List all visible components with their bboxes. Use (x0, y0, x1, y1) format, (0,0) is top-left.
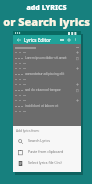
staticText: Search Lyrics (28, 138, 50, 143)
button[interactable]: Back (15, 36, 22, 43)
staticText: sed do eiusmod tempor (25, 88, 61, 92)
button[interactable] (13, 50, 81, 55)
button[interactable] (13, 77, 81, 82)
button[interactable]: consectetur adipiscing elit (13, 71, 81, 77)
button[interactable] (13, 93, 81, 98)
staticText: Add lyrics from: (16, 129, 40, 133)
button[interactable] (13, 61, 81, 66)
button[interactable]: Paste from clipboard (16, 146, 78, 157)
staticText: Paste from clipboard (28, 149, 64, 154)
button[interactable] (13, 109, 81, 114)
button[interactable]: Add line (65, 36, 72, 43)
staticText: add LYRICS (26, 3, 67, 13)
staticText: Lorem ipsum dolor sit amet (25, 56, 67, 60)
button[interactable]: Undo (58, 36, 65, 43)
button[interactable]: Select lyrics file (.lrc) (16, 157, 78, 168)
staticText: incididunt ut labore et (25, 104, 59, 108)
button[interactable] (13, 82, 81, 87)
staticText: consectetur adipiscing elit (25, 72, 65, 76)
staticText: or Search lyrics (3, 14, 90, 29)
button[interactable] (13, 98, 81, 103)
button[interactable]: Lorem ipsum dolor sit amet (13, 55, 81, 61)
button[interactable]: More options (72, 36, 79, 43)
button[interactable]: sed do eiusmod tempor (13, 87, 81, 93)
button[interactable]: incididunt ut labore et (13, 103, 81, 109)
button[interactable]: Search Lyrics (16, 135, 78, 146)
button[interactable] (13, 66, 81, 71)
staticText: Select lyrics file (.lrc) (28, 160, 62, 165)
staticText: Lyrics Editor (24, 37, 51, 43)
